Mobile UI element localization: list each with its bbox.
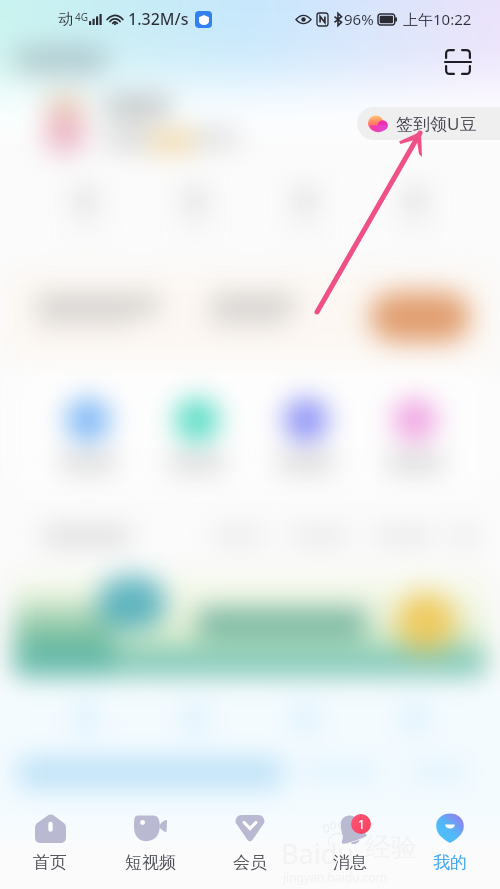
button[interactable]: 首页 xyxy=(6,812,94,882)
staticText: 消息 xyxy=(333,852,367,873)
button[interactable]: 1 xyxy=(306,812,394,882)
button[interactable]: 短视频 xyxy=(106,812,194,882)
staticText: 1.32M/s xyxy=(128,8,189,30)
staticText: 经验 xyxy=(365,831,417,864)
staticText: 1 xyxy=(358,816,365,832)
staticText: 4G xyxy=(75,10,88,24)
staticText: 会员 xyxy=(233,852,267,873)
staticText: Baidu xyxy=(281,835,354,872)
staticText: 签到领U豆 xyxy=(396,112,477,135)
button[interactable]: 扫一扫 xyxy=(440,44,476,80)
button[interactable]: 会员 xyxy=(206,812,294,882)
staticText: 我的 xyxy=(433,852,467,873)
staticText: 短视频 xyxy=(125,852,176,873)
staticText: 上午10:22 xyxy=(403,9,472,29)
staticText: 动 xyxy=(58,10,73,29)
staticText: 96% xyxy=(344,9,374,29)
staticText: jingyan.baidu.com xyxy=(283,869,387,885)
button[interactable]: 签到领U豆 xyxy=(357,107,500,140)
button[interactable]: 我的 xyxy=(406,812,494,882)
staticText: 首页 xyxy=(33,852,67,873)
